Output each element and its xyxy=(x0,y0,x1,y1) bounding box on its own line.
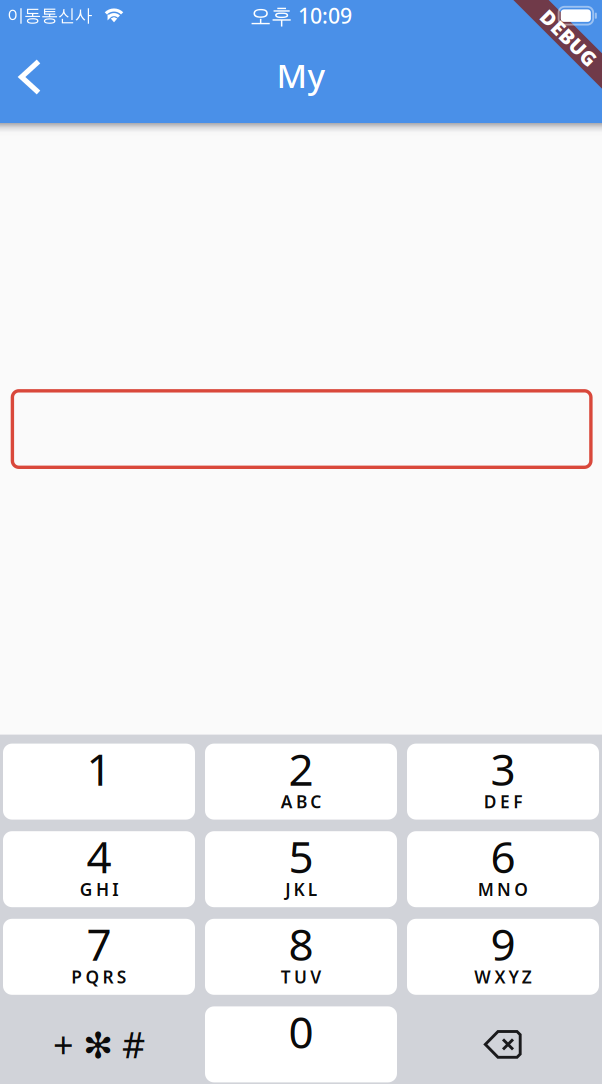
staticText: 5 xyxy=(288,827,313,885)
staticText: C xyxy=(310,790,321,813)
button[interactable]: 8 xyxy=(205,919,397,995)
button[interactable]: 2 xyxy=(205,744,397,820)
staticText: 1 xyxy=(86,739,111,798)
staticText: A xyxy=(281,790,293,813)
staticText: W xyxy=(474,965,491,988)
staticText: F xyxy=(513,790,522,813)
staticText: J xyxy=(285,878,290,901)
button[interactable]: 4 xyxy=(3,831,195,907)
staticText: Z xyxy=(522,965,532,988)
staticText: V xyxy=(310,965,321,988)
staticText: 3 xyxy=(490,739,515,798)
staticText: U xyxy=(294,965,307,988)
staticText: M xyxy=(478,878,494,901)
button[interactable]: 5 xyxy=(205,831,397,907)
staticText: L xyxy=(308,878,317,901)
button[interactable]: 6 xyxy=(407,831,599,907)
staticText: I xyxy=(112,878,118,901)
button[interactable]: Back xyxy=(0,47,60,107)
button[interactable]: 0 xyxy=(205,1006,397,1082)
staticText: S xyxy=(117,965,127,988)
staticText: My xyxy=(276,53,325,97)
staticText: + ✻ # xyxy=(53,1020,145,1068)
staticText: 2 xyxy=(288,739,313,798)
staticText: 6 xyxy=(490,827,515,885)
button[interactable]: 1 xyxy=(3,744,195,820)
staticText: 오후 10:09 xyxy=(250,1,352,30)
button[interactable]: Delete xyxy=(407,1006,599,1082)
staticText: 0 xyxy=(288,1002,313,1061)
staticText: K xyxy=(293,878,304,901)
staticText: 9 xyxy=(490,915,515,973)
staticText: P xyxy=(71,965,82,988)
staticText: N xyxy=(497,878,511,901)
staticText: D xyxy=(484,790,497,813)
staticText: 7 xyxy=(86,915,111,973)
button[interactable]: 3 xyxy=(407,744,599,820)
staticText: Q xyxy=(85,965,99,988)
staticText: 8 xyxy=(288,915,313,973)
button[interactable]: 7 xyxy=(3,919,195,995)
staticText: G xyxy=(80,878,93,901)
staticText: 4 xyxy=(86,827,111,885)
staticText: O xyxy=(514,878,528,901)
staticText: R xyxy=(103,965,114,988)
staticText: DEBUG xyxy=(534,22,602,49)
staticText: E xyxy=(500,790,510,813)
staticText: Y xyxy=(509,965,519,988)
staticText: X xyxy=(494,965,505,988)
staticText: H xyxy=(96,878,109,901)
button[interactable]: 9 xyxy=(407,919,599,995)
staticText: 이동통신사 xyxy=(7,5,92,26)
staticText: T xyxy=(281,965,291,988)
staticText: B xyxy=(296,790,307,813)
button[interactable]: + ✻ # xyxy=(3,1006,195,1082)
